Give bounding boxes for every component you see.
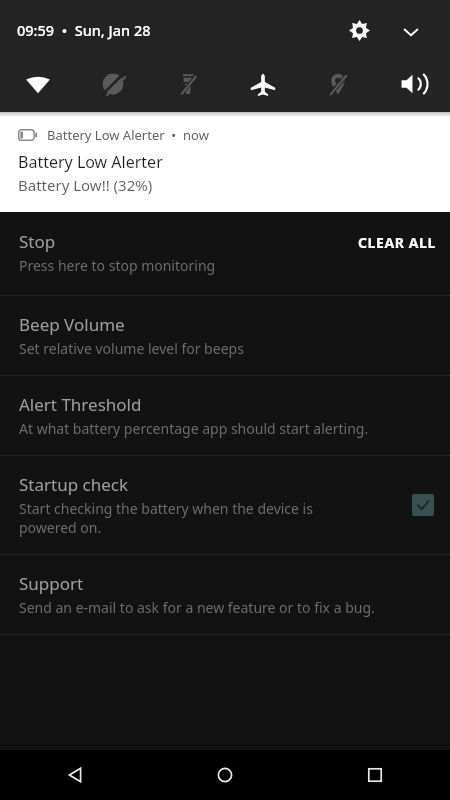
- button[interactable]: Beep Volume: [0, 296, 450, 375]
- staticText: Support: [19, 572, 84, 595]
- button[interactable]: Back: [0, 750, 150, 800]
- staticText: At what battery percentage app should st…: [19, 419, 369, 438]
- staticText: Start checking the battery when the devi…: [19, 499, 313, 537]
- staticText: Beep Volume: [19, 313, 125, 336]
- button[interactable]: Startup check toggle: [412, 494, 434, 516]
- button[interactable]: CLEAR ALL: [358, 222, 436, 262]
- button[interactable]: Support: [0, 555, 450, 634]
- staticText: CLEAR ALL: [358, 233, 436, 252]
- button[interactable]: Sound: [375, 64, 450, 104]
- button[interactable]: Do not disturb: [75, 64, 150, 104]
- button[interactable]: Collapse: [395, 16, 427, 48]
- button[interactable]: Startup check: [0, 456, 450, 554]
- button[interactable]: Settings: [343, 14, 375, 46]
- staticText: Battery Low!! (32%): [18, 175, 153, 195]
- button[interactable]: Flashlight: [150, 64, 225, 104]
- staticText: 09:59 • Sun, Jan 28: [17, 20, 151, 40]
- staticText: Set relative volume level for beeps: [19, 339, 244, 358]
- button[interactable]: Stop: [0, 212, 450, 295]
- staticText: Battery Low Alerter: [18, 151, 163, 173]
- button[interactable]: Location: [300, 64, 375, 104]
- button[interactable]: Wi-Fi: [0, 64, 75, 104]
- button[interactable]: Battery Low Alerter • now: [0, 112, 450, 212]
- button[interactable]: Alert Threshold: [0, 376, 450, 455]
- button[interactable]: Airplane mode: [225, 64, 300, 104]
- staticText: Stop: [19, 230, 56, 253]
- button[interactable]: Home: [150, 750, 300, 800]
- staticText: Startup check: [19, 473, 129, 496]
- staticText: Press here to stop monitoring: [19, 256, 216, 275]
- staticText: Alert Threshold: [19, 393, 142, 416]
- button[interactable]: Recents: [300, 750, 450, 800]
- staticText: Send an e-mail to ask for a new feature …: [19, 598, 375, 617]
- staticText: Battery Low Alerter • now: [47, 126, 209, 144]
